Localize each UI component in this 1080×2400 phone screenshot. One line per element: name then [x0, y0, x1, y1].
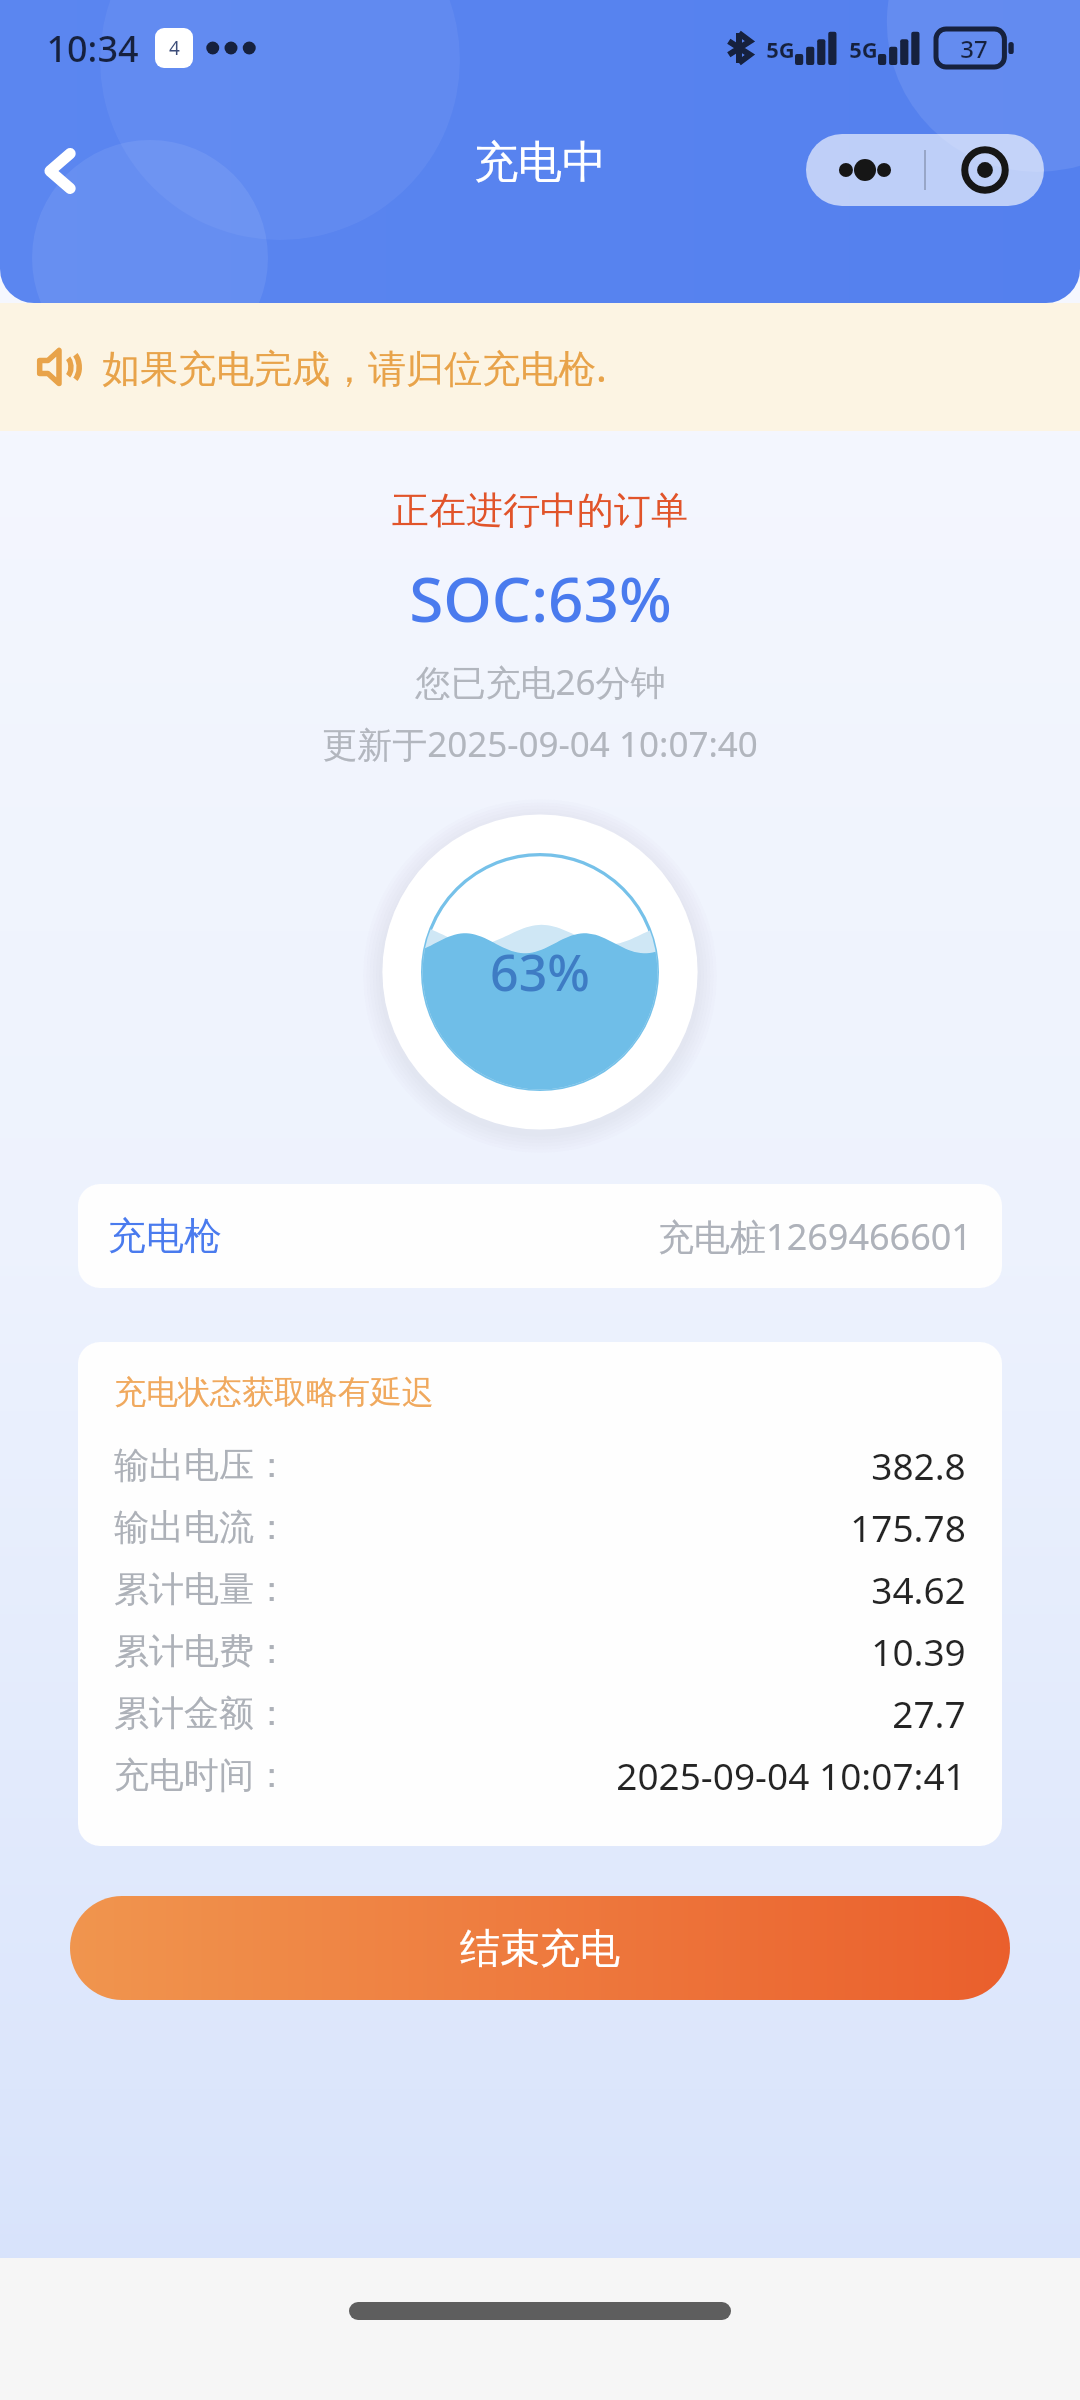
staticText: 累计电费： [114, 1629, 289, 1673]
staticText: 382.8 [871, 1440, 966, 1490]
staticText: 您已充电26分钟 [415, 658, 666, 706]
staticText: 5G [766, 34, 795, 64]
staticText: 充电枪 [108, 1212, 222, 1260]
button[interactable]: 充电状态获取略有延迟 [78, 1342, 1002, 1846]
staticText: 27.7 [892, 1688, 966, 1738]
staticText: 充电时间： [114, 1753, 289, 1797]
staticText: 累计电量： [114, 1567, 289, 1611]
staticText: 2025-09-04 10:07:41 [616, 1750, 966, 1800]
button[interactable]: 结束充电 [70, 1896, 1010, 2000]
staticText: 10:34 [46, 24, 139, 73]
button[interactable]: 充电枪 [78, 1184, 1002, 1288]
staticText: 4 [169, 35, 180, 61]
staticText: 累计金额： [114, 1691, 289, 1735]
button[interactable]: Menu and close [806, 134, 1044, 206]
staticText: 如果充电完成，请归位充电枪. [102, 341, 607, 393]
staticText: 充电状态获取略有延迟 [114, 1372, 434, 1412]
staticText: 37 [960, 32, 988, 65]
staticText: 63% [490, 938, 590, 1006]
staticText: 充电桩1269466601 [658, 1212, 972, 1261]
staticText: 175.78 [850, 1502, 966, 1552]
staticText: 正在进行中的订单 [392, 487, 688, 534]
staticText: 输出电流： [114, 1505, 289, 1549]
staticText: 输出电压： [114, 1443, 289, 1487]
staticText: 更新于2025-09-04 10:07:40 [322, 720, 758, 768]
staticText: 10.39 [871, 1626, 966, 1676]
staticText: 充电中 [474, 135, 606, 190]
staticText: SOC:63% [409, 556, 672, 640]
button[interactable]: Back [18, 128, 104, 214]
staticText: 34.62 [871, 1564, 966, 1614]
staticText: 5G [849, 34, 878, 64]
staticText: 结束充电 [460, 1923, 620, 1973]
